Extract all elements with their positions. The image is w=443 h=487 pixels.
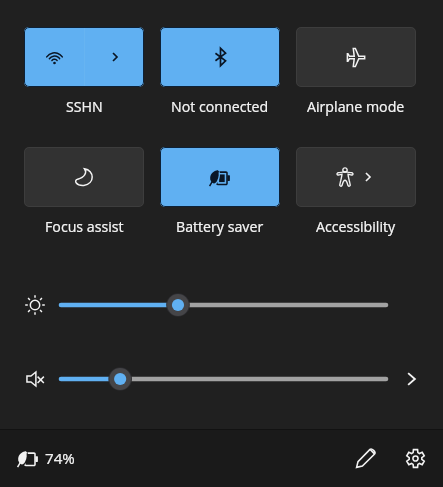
- button[interactable]: More volume settings: [398, 359, 424, 399]
- button[interactable]: Edit: [346, 438, 386, 478]
- staticText: Not connected: [171, 97, 269, 116]
- button[interactable]: [160, 147, 280, 207]
- staticText: SSHN: [66, 97, 103, 116]
- button[interactable]: [160, 27, 280, 87]
- button[interactable]: [49, 359, 398, 399]
- button[interactable]: [24, 147, 144, 207]
- staticText: Battery saver: [176, 217, 264, 236]
- staticText: 74%: [45, 448, 75, 469]
- button[interactable]: Manage Wi-Fi connections: [85, 27, 144, 87]
- button[interactable]: [49, 285, 398, 325]
- staticText: Focus assist: [45, 217, 124, 236]
- button[interactable]: [296, 27, 416, 87]
- button[interactable]: [296, 147, 416, 207]
- button[interactable]: Settings: [395, 438, 435, 478]
- button[interactable]: [24, 27, 85, 87]
- staticText: Accessibility: [316, 217, 396, 236]
- staticText: Airplane mode: [307, 97, 405, 116]
